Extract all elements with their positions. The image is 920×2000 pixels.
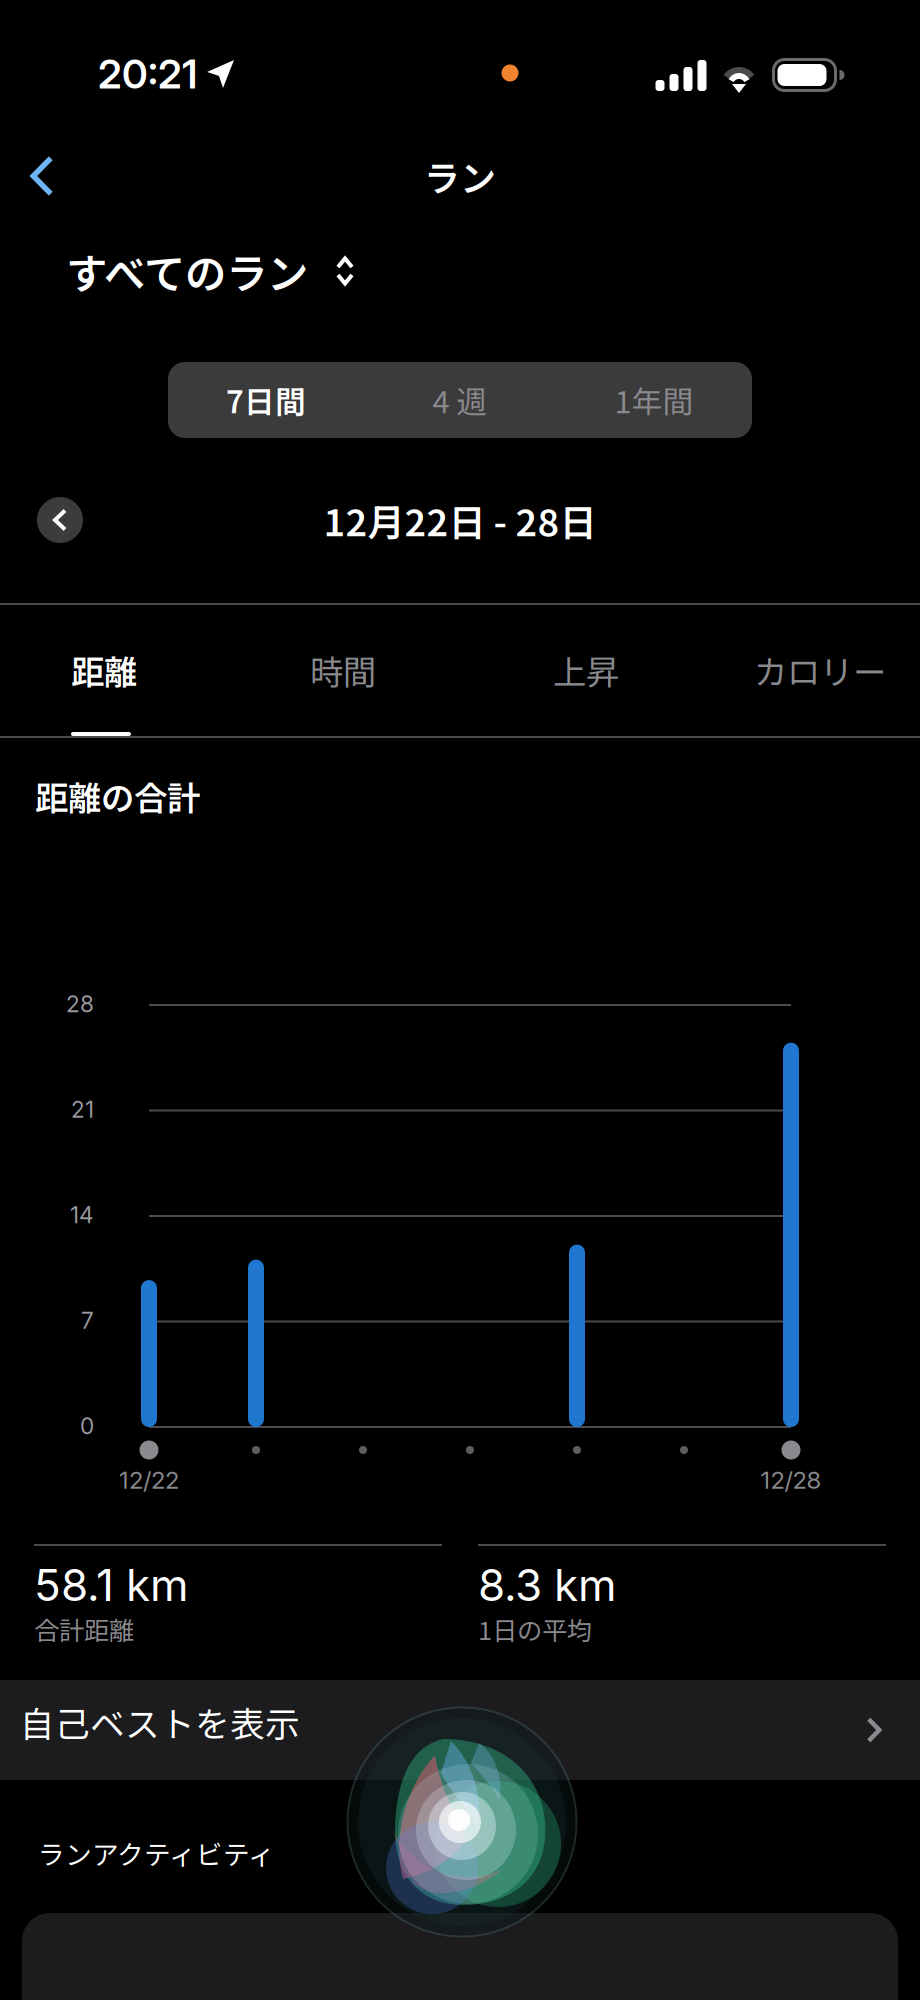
staticText: 7日間 bbox=[226, 378, 306, 422]
button[interactable]: Back bbox=[0, 126, 97, 226]
staticText: 12/28 bbox=[760, 1465, 821, 1494]
staticText: 14 bbox=[70, 1201, 94, 1229]
button[interactable]: 1年間 bbox=[557, 362, 751, 438]
staticText: ランアクティビティ bbox=[38, 1834, 275, 1872]
staticText: 1年間 bbox=[614, 378, 693, 422]
staticText: 距離の合計 bbox=[35, 772, 200, 820]
staticText: 12/22 bbox=[119, 1465, 179, 1494]
staticText: カロリー bbox=[754, 646, 886, 694]
staticText: 8.3 km bbox=[478, 1558, 617, 1612]
staticText: 1日の平均 bbox=[478, 1611, 592, 1647]
staticText: 7 bbox=[81, 1307, 94, 1334]
button[interactable]: Previous week bbox=[14, 474, 106, 566]
staticText: ラン bbox=[424, 150, 496, 202]
button[interactable]: カロリー bbox=[710, 604, 920, 736]
button[interactable]: 時間 bbox=[233, 604, 453, 736]
staticText: 4 週 bbox=[432, 378, 487, 422]
staticText: 0 bbox=[80, 1412, 94, 1440]
staticText: 28 bbox=[66, 990, 94, 1018]
staticText: 距離 bbox=[71, 646, 137, 694]
button[interactable]: 自己ベストを表示 bbox=[0, 1680, 920, 1780]
staticText: 自己ベストを表示 bbox=[20, 1697, 300, 1747]
staticText: 58.1 km bbox=[34, 1558, 189, 1612]
staticText: 時間 bbox=[310, 646, 376, 694]
button[interactable]: 4 週 bbox=[363, 362, 557, 438]
staticText: 20:21 bbox=[98, 50, 197, 98]
staticText: 12月22日 - 28日 bbox=[323, 493, 596, 547]
staticText: すべてのラン bbox=[66, 241, 308, 301]
staticText: 21 bbox=[71, 1096, 94, 1123]
staticText: 上昇 bbox=[553, 646, 619, 694]
button[interactable]: すべてのラン bbox=[66, 233, 826, 309]
button[interactable]: 距離 bbox=[0, 604, 214, 736]
button[interactable]: 上昇 bbox=[476, 604, 696, 736]
staticText: 合計距離 bbox=[34, 1611, 134, 1647]
button[interactable]: 7日間 bbox=[169, 362, 363, 438]
